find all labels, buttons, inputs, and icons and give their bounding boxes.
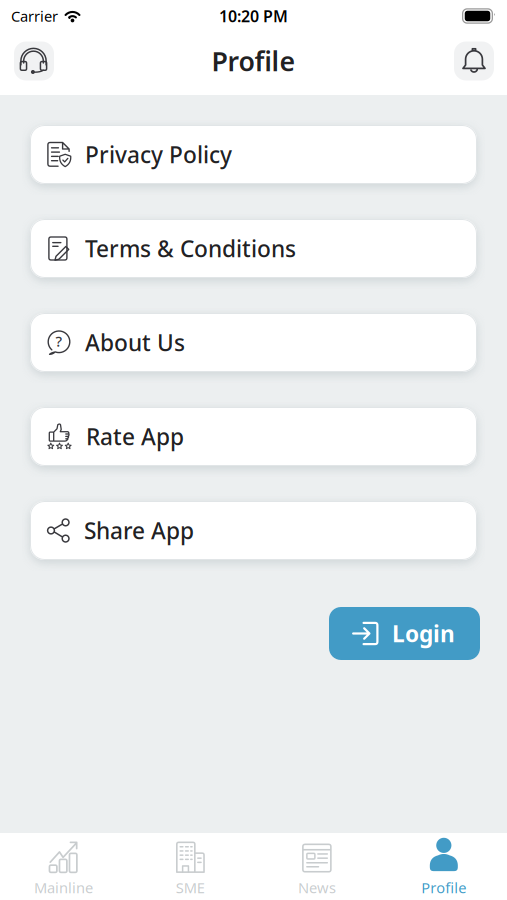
staticText: News: [298, 878, 336, 897]
button[interactable]: Rate App: [30, 407, 477, 466]
staticText: Mainline: [34, 878, 93, 897]
button[interactable]: Privacy Policy: [30, 125, 477, 184]
button[interactable]: Share App: [30, 501, 477, 560]
button[interactable]: Notifications: [454, 41, 494, 80]
staticText: Share App: [84, 515, 194, 545]
button[interactable]: Profile: [380, 836, 507, 897]
button[interactable]: Login: [329, 607, 480, 660]
staticText: Login: [392, 618, 455, 648]
staticText: Profile: [211, 43, 295, 79]
button[interactable]: SME: [127, 836, 254, 897]
button[interactable]: Support: [14, 41, 54, 80]
staticText: Terms & Conditions: [85, 233, 296, 263]
staticText: SME: [176, 878, 205, 897]
button[interactable]: ?: [30, 313, 477, 372]
button[interactable]: News: [253, 836, 380, 897]
staticText: Profile: [421, 878, 466, 897]
button[interactable]: Terms & Conditions: [30, 219, 477, 278]
button[interactable]: Mainline: [0, 836, 127, 897]
staticText: Carrier: [11, 6, 58, 26]
staticText: About Us: [85, 327, 185, 357]
staticText: 10:20 PM: [219, 5, 288, 27]
staticText: ?: [55, 331, 62, 351]
staticText: Rate App: [86, 421, 184, 451]
staticText: Privacy Policy: [85, 139, 232, 169]
